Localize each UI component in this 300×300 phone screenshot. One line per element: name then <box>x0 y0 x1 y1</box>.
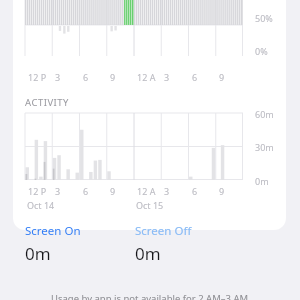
staticText: 9 <box>219 71 225 83</box>
staticText: Oct 15 <box>136 199 164 211</box>
staticText: 0m <box>25 242 51 265</box>
staticText: 12 A <box>137 71 156 83</box>
staticText: 3 <box>164 185 170 197</box>
staticText: 0% <box>255 45 268 57</box>
staticText: ACTIVITY <box>25 96 69 109</box>
staticText: 12 P <box>28 185 47 197</box>
staticText: 3 <box>164 71 170 83</box>
staticText: 12 A <box>137 185 156 197</box>
button[interactable] <box>13 0 286 230</box>
staticText: 3 <box>55 185 61 197</box>
staticText: Usage by app is not available for 2 AM–3… <box>51 292 249 300</box>
staticText: 6 <box>192 71 198 83</box>
staticText: Screen Off <box>135 223 192 239</box>
staticText: Oct 14 <box>27 199 55 211</box>
staticText: 9 <box>110 71 116 83</box>
button[interactable]: Screen Off <box>135 223 245 265</box>
staticText: 9 <box>219 185 225 197</box>
staticText: 0m <box>135 242 161 265</box>
staticText: 9 <box>110 185 116 197</box>
staticText: 6 <box>192 185 198 197</box>
staticText: 60m <box>255 108 274 120</box>
staticText: 6 <box>83 185 89 197</box>
staticText: 50% <box>255 12 273 24</box>
button[interactable]: Screen On <box>25 223 135 265</box>
staticText: Screen On <box>25 223 81 239</box>
staticText: 30m <box>255 141 274 153</box>
staticText: 12 P <box>28 71 47 83</box>
staticText: 3 <box>55 71 61 83</box>
staticText: 6 <box>83 71 89 83</box>
staticText: 0m <box>255 175 269 187</box>
